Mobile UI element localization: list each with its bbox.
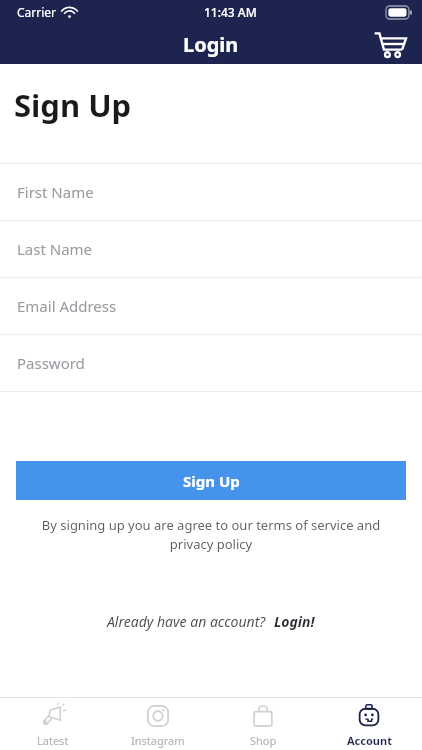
staticText: 11:43 AM	[204, 4, 257, 20]
button[interactable]: Instagram	[105, 697, 210, 750]
staticText: Password	[17, 353, 85, 373]
staticText: Sign Up	[14, 84, 132, 126]
button[interactable]: Last Name	[0, 220, 422, 277]
staticText: Instagram	[131, 733, 185, 748]
staticText: Sign Up	[183, 471, 240, 491]
button[interactable]: Latest	[0, 697, 105, 750]
staticText: Login!	[274, 612, 315, 631]
staticText: Account	[347, 733, 392, 748]
staticText: Email Address	[17, 296, 117, 316]
staticText: Carrier	[17, 4, 57, 20]
button[interactable]: Login!	[274, 612, 315, 631]
staticText: Shop	[250, 733, 277, 748]
button[interactable]: Password	[0, 334, 422, 391]
staticText: Latest	[37, 733, 69, 748]
button[interactable]: Cart	[366, 24, 414, 64]
button[interactable]: Account	[316, 697, 422, 750]
staticText: Last Name	[17, 239, 93, 259]
staticText: By signing up you are agree to our terms…	[38, 516, 384, 553]
staticText: Already have an account?	[107, 612, 266, 631]
button[interactable]: Email Address	[0, 277, 422, 334]
button[interactable]: Shop	[210, 697, 316, 750]
button[interactable]: Sign Up	[16, 461, 406, 500]
staticText: First Name	[17, 182, 94, 202]
staticText: Login	[183, 31, 239, 58]
button[interactable]: First Name	[0, 163, 422, 220]
